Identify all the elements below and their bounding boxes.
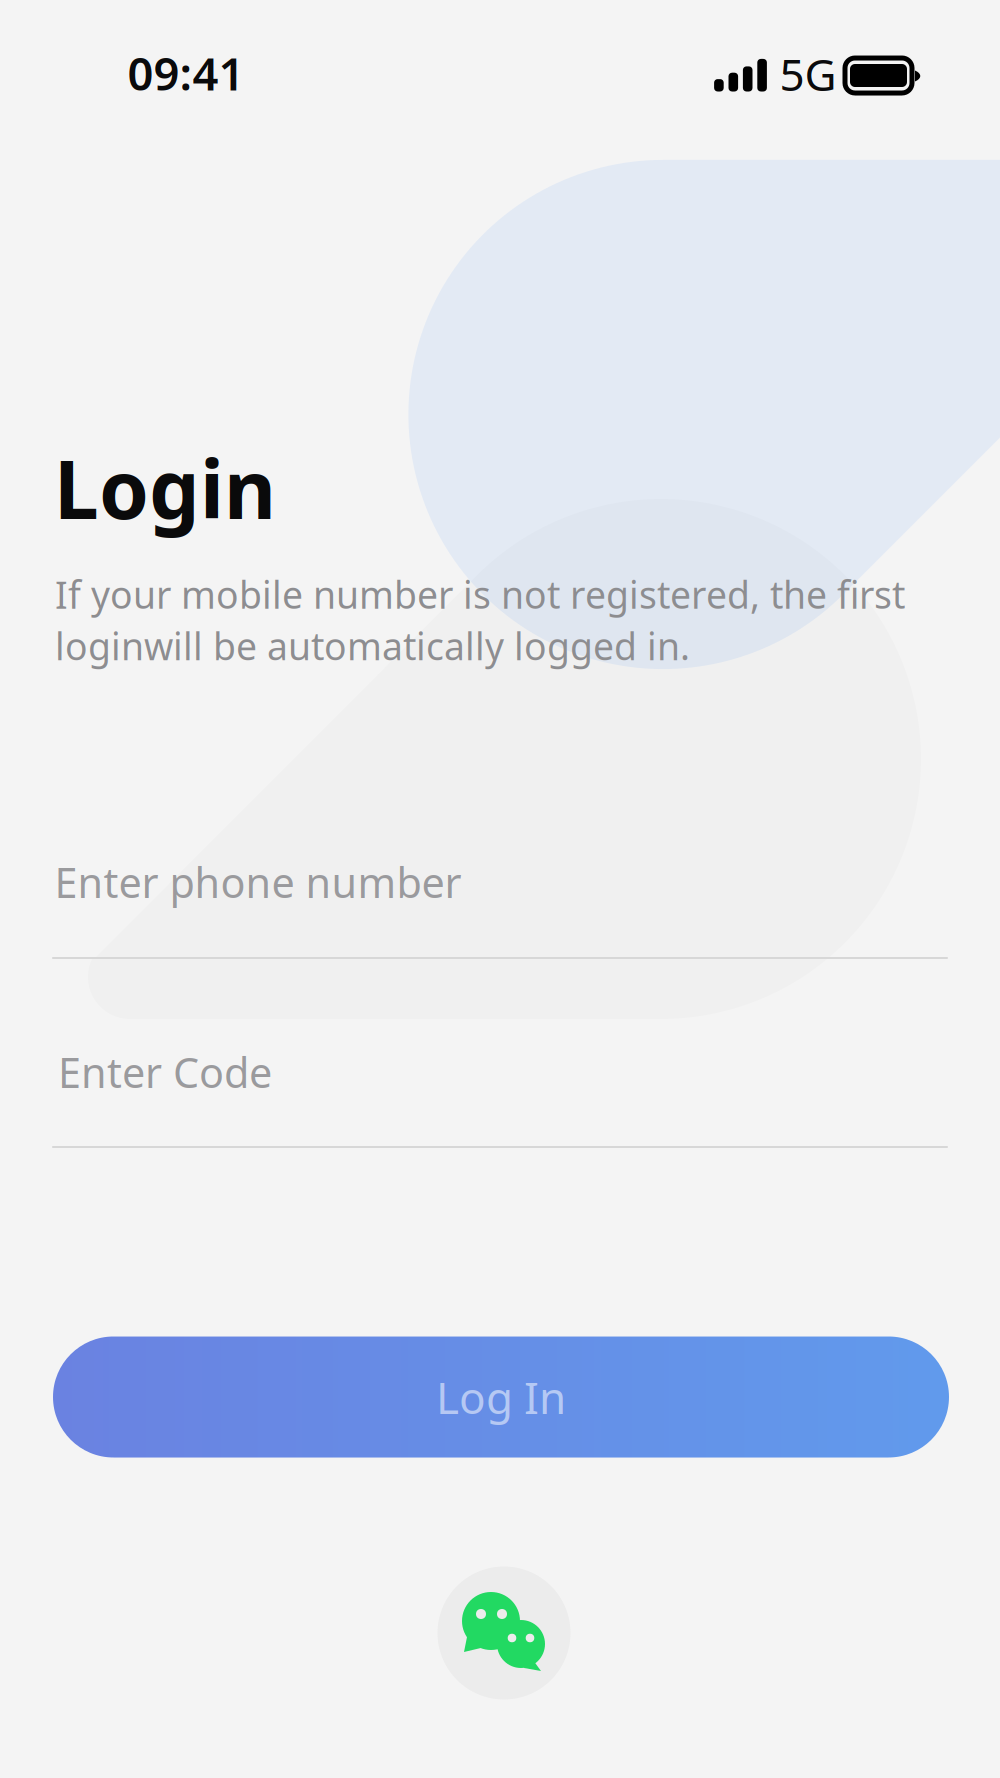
staticText: Login [54,435,276,541]
staticText: If your mobile number is not registered,… [55,569,905,619]
staticText: Enter phone number [54,855,461,909]
staticText: loginwill be automatically logged in. [55,621,690,671]
staticText: 5G [779,45,836,103]
staticText: Enter Code [58,1045,272,1099]
button[interactable]: Log In [53,1336,949,1457]
staticText: Log In [436,1368,566,1426]
staticText: 09:41 [127,43,244,103]
button[interactable]: Sign in with WeChat [437,1566,570,1699]
